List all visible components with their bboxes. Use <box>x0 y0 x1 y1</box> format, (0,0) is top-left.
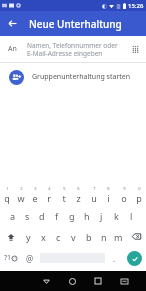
staticText: c <box>56 231 61 243</box>
staticText: q <box>4 192 10 204</box>
button[interactable]: @ <box>21 247 38 269</box>
button[interactable]: g <box>64 205 79 226</box>
button[interactable]: x <box>36 226 51 247</box>
staticText: b <box>86 231 92 243</box>
staticText: 1 <box>6 186 9 191</box>
staticText: f <box>55 210 59 222</box>
button[interactable]: 3 <box>28 184 42 205</box>
staticText: 4 <box>48 186 51 191</box>
button[interactable]: Übersicht <box>85 271 111 291</box>
button[interactable]: 9 <box>116 184 131 205</box>
button[interactable]: Löschen <box>126 226 146 247</box>
button[interactable]: 0 <box>131 184 146 205</box>
staticText: 5 <box>63 186 66 191</box>
button[interactable]: Wähltastatur <box>124 38 146 60</box>
staticText: t <box>62 192 66 204</box>
button[interactable]: Senden <box>127 251 142 266</box>
button[interactable]: . <box>107 247 122 269</box>
staticText: r <box>47 192 51 204</box>
staticText: 0 <box>138 186 141 191</box>
staticText: Neue Unterhaltung <box>29 17 122 31</box>
button[interactable]: d <box>34 205 49 226</box>
staticText: x <box>41 231 46 243</box>
button[interactable]: Umschalttaste <box>0 226 21 247</box>
staticText: 8 <box>107 186 110 191</box>
button[interactable]: Zurück <box>34 271 59 291</box>
button[interactable]: 7 <box>86 184 101 205</box>
button[interactable]: 5 <box>56 184 71 205</box>
button[interactable]: Symbole <box>0 247 21 269</box>
button[interactable]: Zurück <box>0 11 25 36</box>
button[interactable]: 8 <box>101 184 116 205</box>
button[interactable]: n <box>96 226 111 247</box>
button[interactable]: b <box>81 226 96 247</box>
button[interactable]: f <box>49 205 64 226</box>
staticText: 7 <box>93 186 96 191</box>
staticText: 15:26 <box>128 2 144 10</box>
staticText: e <box>32 192 38 204</box>
button[interactable]: a <box>6 205 20 226</box>
button[interactable]: m <box>111 226 126 247</box>
staticText: s <box>25 210 30 222</box>
button[interactable]: 4 <box>42 184 56 205</box>
button[interactable]: 2 <box>14 184 28 205</box>
button[interactable]: j <box>94 205 109 226</box>
staticText: k <box>114 210 119 222</box>
button[interactable]: Gruppenunterhaltung starten <box>0 63 146 91</box>
staticText: 2 <box>20 186 23 191</box>
staticText: v <box>71 231 76 243</box>
button[interactable]: Tastatur schließen <box>111 271 137 291</box>
staticText: z <box>76 192 81 204</box>
staticText: l <box>130 210 133 222</box>
staticText: 6 <box>77 186 80 191</box>
button[interactable]: 6 <box>71 184 86 205</box>
button[interactable]: Startbildschirm <box>59 271 85 291</box>
button[interactable]: k <box>109 205 124 226</box>
button[interactable]: c <box>51 226 66 247</box>
button[interactable]: y <box>21 226 36 247</box>
staticText: y <box>26 231 31 243</box>
staticText: h <box>84 210 90 222</box>
staticText: @ <box>26 253 34 264</box>
staticText: Namen, Telefonnummer oder E-Mail-Adresse… <box>27 41 120 58</box>
staticText: a <box>10 210 16 222</box>
staticText: i <box>107 192 110 204</box>
staticText: p <box>136 192 142 204</box>
staticText: An <box>8 44 25 54</box>
staticText: g <box>69 210 75 222</box>
staticText: w <box>17 192 25 204</box>
button[interactable]: An <box>0 36 146 62</box>
staticText: u <box>91 192 97 204</box>
button[interactable]: v <box>66 226 81 247</box>
staticText: ?1 <box>4 253 12 263</box>
staticText: . <box>113 253 116 264</box>
staticText: j <box>100 210 103 222</box>
button[interactable]: l <box>124 205 139 226</box>
button[interactable]: h <box>79 205 94 226</box>
staticText: Gruppenunterhaltung starten <box>32 72 131 82</box>
button[interactable]: 1 <box>0 184 14 205</box>
staticText: 9 <box>123 186 126 191</box>
button[interactable]: s <box>20 205 34 226</box>
staticText: n <box>101 231 107 243</box>
staticText: d <box>39 210 45 222</box>
staticText: m <box>114 231 123 243</box>
staticText: o <box>121 192 127 204</box>
staticText: 3 <box>34 186 37 191</box>
